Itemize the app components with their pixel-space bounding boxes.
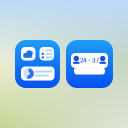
button[interactable]: Weather and stats app	[15, 40, 60, 88]
staticText: 24 - 37	[80, 57, 99, 64]
button[interactable]: Live scores app	[66, 40, 113, 88]
